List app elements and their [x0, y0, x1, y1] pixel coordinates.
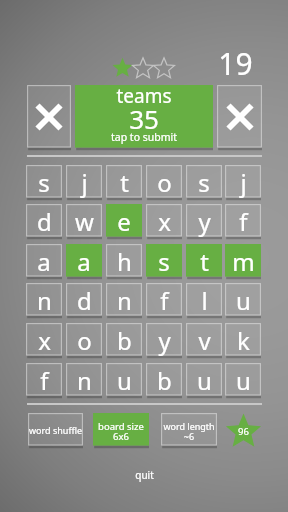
- staticText: h: [117, 245, 132, 278]
- staticText: 6x6: [93, 430, 149, 443]
- button[interactable]: Score 96: [225, 412, 262, 449]
- staticText: n: [77, 364, 92, 397]
- staticText: j: [81, 166, 88, 199]
- button[interactable]: a: [26, 244, 62, 278]
- staticText: b: [117, 324, 132, 357]
- staticText: o: [157, 166, 172, 199]
- staticText: x: [158, 205, 171, 238]
- button[interactable]: y: [186, 204, 222, 238]
- button[interactable]: h: [106, 244, 142, 278]
- staticText: word length: [161, 420, 217, 432]
- staticText: ~6: [161, 430, 217, 442]
- button[interactable]: u: [106, 363, 142, 397]
- button[interactable]: x: [26, 323, 62, 357]
- staticText: s: [38, 166, 50, 199]
- button[interactable]: teams: [75, 85, 213, 149]
- button[interactable]: word length: [161, 413, 217, 447]
- button[interactable]: f: [146, 283, 182, 317]
- staticText: s: [158, 245, 170, 278]
- button[interactable]: u: [186, 363, 222, 397]
- button[interactable]: f: [26, 363, 62, 397]
- button[interactable]: t: [186, 244, 222, 278]
- button[interactable]: n: [26, 283, 62, 317]
- button[interactable]: u: [225, 283, 261, 317]
- button[interactable]: b: [146, 363, 182, 397]
- staticText: tap to submit: [75, 130, 213, 144]
- button[interactable]: Clear letters: [27, 85, 71, 149]
- button[interactable]: o: [146, 165, 182, 199]
- button[interactable]: a: [66, 244, 102, 278]
- staticText: a: [77, 245, 91, 278]
- staticText: word shuffle: [29, 424, 82, 436]
- staticText: j: [240, 166, 247, 199]
- staticText: m: [232, 245, 255, 278]
- staticText: 96: [238, 425, 249, 438]
- button[interactable]: word shuffle: [28, 413, 83, 447]
- button[interactable]: d: [26, 204, 62, 238]
- button[interactable]: t: [106, 165, 142, 199]
- staticText: v: [198, 324, 211, 357]
- staticText: d: [77, 284, 92, 317]
- button[interactable]: s: [186, 165, 222, 199]
- button[interactable]: e: [106, 204, 142, 238]
- button[interactable]: d: [66, 283, 102, 317]
- staticText: d: [37, 205, 52, 238]
- staticText: 19: [218, 43, 253, 84]
- staticText: u: [117, 364, 132, 397]
- staticText: u: [236, 364, 251, 397]
- button[interactable]: s: [26, 165, 62, 199]
- button[interactable]: w: [66, 204, 102, 238]
- staticText: n: [37, 284, 52, 317]
- button[interactable]: y: [146, 323, 182, 357]
- staticText: w: [75, 205, 94, 238]
- staticText: board size: [93, 420, 149, 433]
- button[interactable]: n: [66, 363, 102, 397]
- button[interactable]: n: [106, 283, 142, 317]
- staticText: a: [37, 245, 51, 278]
- button[interactable]: b: [106, 323, 142, 357]
- button[interactable]: Clear letters: [217, 85, 262, 149]
- staticText: o: [77, 324, 92, 357]
- staticText: x: [38, 324, 51, 357]
- button[interactable]: j: [66, 165, 102, 199]
- button[interactable]: u: [225, 363, 261, 397]
- button[interactable]: m: [225, 244, 261, 278]
- button[interactable]: x: [146, 204, 182, 238]
- button[interactable]: l: [186, 283, 222, 317]
- staticText: y: [158, 324, 171, 357]
- staticText: n: [117, 284, 132, 317]
- button[interactable]: j: [225, 165, 261, 199]
- staticText: f: [239, 205, 248, 238]
- staticText: teams: [75, 83, 213, 109]
- button[interactable]: f: [225, 204, 261, 238]
- staticText: k: [237, 324, 250, 357]
- button[interactable]: s: [146, 244, 182, 278]
- staticText: quit: [135, 468, 154, 482]
- staticText: e: [117, 205, 131, 238]
- button[interactable]: board size: [93, 413, 149, 447]
- staticText: s: [198, 166, 210, 199]
- staticText: l: [201, 284, 208, 317]
- staticText: 35: [75, 101, 213, 136]
- staticText: t: [120, 166, 129, 199]
- staticText: f: [40, 364, 49, 397]
- button[interactable]: v: [186, 323, 222, 357]
- staticText: t: [200, 245, 209, 278]
- button[interactable]: o: [66, 323, 102, 357]
- staticText: u: [236, 284, 251, 317]
- staticText: f: [160, 284, 169, 317]
- button[interactable]: quit: [0, 466, 288, 484]
- staticText: b: [157, 364, 172, 397]
- staticText: y: [198, 205, 211, 238]
- staticText: u: [197, 364, 212, 397]
- button[interactable]: k: [225, 323, 261, 357]
